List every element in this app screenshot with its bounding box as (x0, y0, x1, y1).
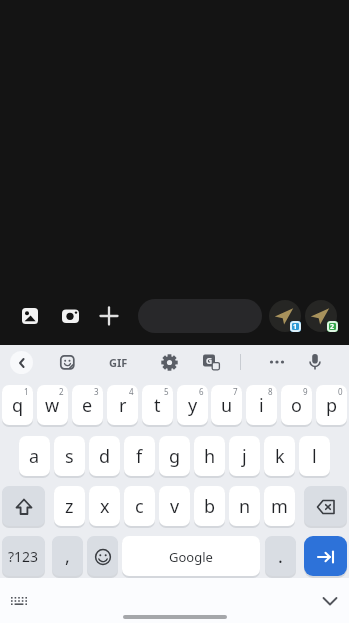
button[interactable]: j (229, 436, 260, 477)
button[interactable] (62, 309, 80, 324)
button[interactable]: f (124, 436, 155, 477)
staticText: 2 (59, 386, 64, 397)
button[interactable] (60, 355, 75, 370)
button[interactable] (161, 354, 178, 371)
staticText: m (271, 494, 288, 519)
button[interactable]: x (89, 486, 120, 527)
staticText: 8 (268, 386, 273, 397)
staticText: 4 (129, 386, 134, 397)
staticText: y (188, 393, 198, 418)
staticText: , (65, 544, 70, 569)
button[interactable]: d (89, 436, 120, 477)
staticText: h (204, 444, 216, 469)
button[interactable] (87, 536, 118, 577)
staticText: 2 (330, 322, 335, 332)
button[interactable]: G (202, 354, 220, 371)
staticText: s (65, 444, 74, 469)
staticText: j (242, 444, 247, 469)
button[interactable]: , (52, 536, 83, 577)
button[interactable] (22, 308, 39, 325)
staticText: t (154, 393, 161, 418)
button[interactable]: t (142, 385, 173, 426)
staticText: n (239, 494, 251, 519)
button[interactable]: a (19, 436, 50, 477)
button[interactable] (305, 300, 337, 332)
button[interactable]: b (194, 486, 225, 527)
staticText: e (82, 393, 93, 418)
button[interactable]: Google (122, 536, 260, 577)
button[interactable] (99, 306, 119, 326)
staticText: v (170, 494, 180, 519)
staticText: r (119, 393, 127, 418)
button[interactable]: i (246, 385, 277, 426)
staticText: b (204, 494, 216, 519)
staticText: w (45, 393, 60, 418)
staticText: 1 (24, 386, 29, 397)
button[interactable]: y (177, 385, 208, 426)
staticText: p (326, 393, 338, 418)
button[interactable]: ?123 (2, 536, 45, 577)
button[interactable]: u (211, 385, 242, 426)
staticText: f (136, 444, 143, 469)
button[interactable]: . (265, 536, 296, 577)
staticText: a (29, 444, 40, 469)
button[interactable]: h (194, 436, 225, 477)
staticText: u (221, 393, 233, 418)
staticText: G (206, 355, 213, 367)
button[interactable] (268, 358, 286, 366)
button[interactable] (304, 536, 347, 577)
staticText: 7 (233, 386, 238, 397)
button[interactable] (269, 300, 301, 332)
button[interactable]: z (54, 486, 85, 527)
staticText: x (100, 494, 110, 519)
button[interactable] (2, 486, 45, 527)
staticText: k (275, 444, 285, 469)
button[interactable]: m (264, 486, 295, 527)
button[interactable] (304, 486, 347, 527)
button[interactable]: c (124, 486, 155, 527)
button[interactable]: v (159, 486, 190, 527)
staticText: d (99, 444, 111, 469)
button[interactable]: g (159, 436, 190, 477)
staticText: g (169, 444, 181, 469)
staticText: c (135, 494, 144, 519)
staticText: l (312, 444, 317, 469)
staticText: . (278, 544, 283, 569)
staticText: i (259, 393, 264, 418)
button[interactable]: k (264, 436, 295, 477)
button[interactable] (9, 595, 29, 608)
button[interactable] (321, 594, 339, 608)
staticText: q (12, 393, 24, 418)
button[interactable]: q (2, 385, 33, 426)
staticText: 1 (293, 322, 298, 332)
button[interactable]: e (72, 385, 103, 426)
button[interactable]: w (37, 385, 68, 426)
staticText: 0 (338, 386, 343, 397)
button[interactable] (10, 351, 33, 374)
staticText: Google (169, 548, 213, 566)
button[interactable] (138, 299, 262, 333)
staticText: z (65, 494, 74, 519)
button[interactable]: o (281, 385, 312, 426)
staticText: 5 (164, 386, 169, 397)
button[interactable]: r (107, 385, 138, 426)
staticText: 6 (199, 386, 204, 397)
button[interactable] (307, 353, 323, 372)
button[interactable]: s (54, 436, 85, 477)
button[interactable]: n (229, 486, 260, 527)
staticText: ?123 (8, 547, 39, 566)
staticText: 9 (303, 386, 308, 397)
staticText: 3 (94, 386, 99, 397)
button[interactable]: GIF (104, 354, 132, 370)
button[interactable]: l (299, 436, 330, 477)
staticText: o (291, 393, 302, 418)
button[interactable]: p (316, 385, 347, 426)
staticText: GIF (109, 355, 128, 370)
